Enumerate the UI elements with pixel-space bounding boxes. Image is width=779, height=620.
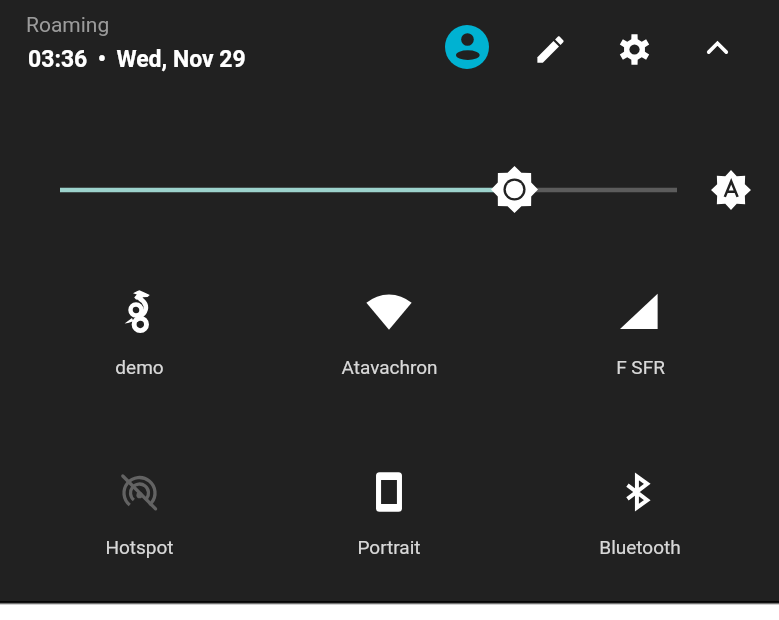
button[interactable]: Bluetooth	[560, 460, 720, 548]
button[interactable]: Settings	[613, 28, 655, 70]
button[interactable]: Edit tiles	[529, 28, 571, 70]
button[interactable]: F SFR	[560, 280, 720, 368]
button[interactable]: Adaptive brightness	[711, 170, 751, 210]
button[interactable]: Collapse quick settings	[696, 26, 738, 68]
button[interactable]: Brightness level	[491, 166, 538, 213]
staticText: Hotspot	[105, 536, 174, 558]
button[interactable]: Atavachron	[309, 280, 469, 368]
button[interactable]: User account	[445, 25, 489, 69]
button[interactable]: demo	[59, 280, 219, 368]
button[interactable]: Portrait	[309, 460, 469, 548]
staticText: Bluetooth	[599, 536, 681, 558]
staticText: F SFR	[616, 356, 665, 378]
staticText: demo	[115, 356, 164, 378]
button[interactable]: Hotspot	[59, 460, 219, 548]
staticText: 03:36 • Wed, Nov 29	[28, 46, 246, 73]
staticText: Roaming	[26, 13, 110, 38]
staticText: Atavachron	[341, 356, 438, 378]
staticText: Portrait	[357, 536, 421, 558]
